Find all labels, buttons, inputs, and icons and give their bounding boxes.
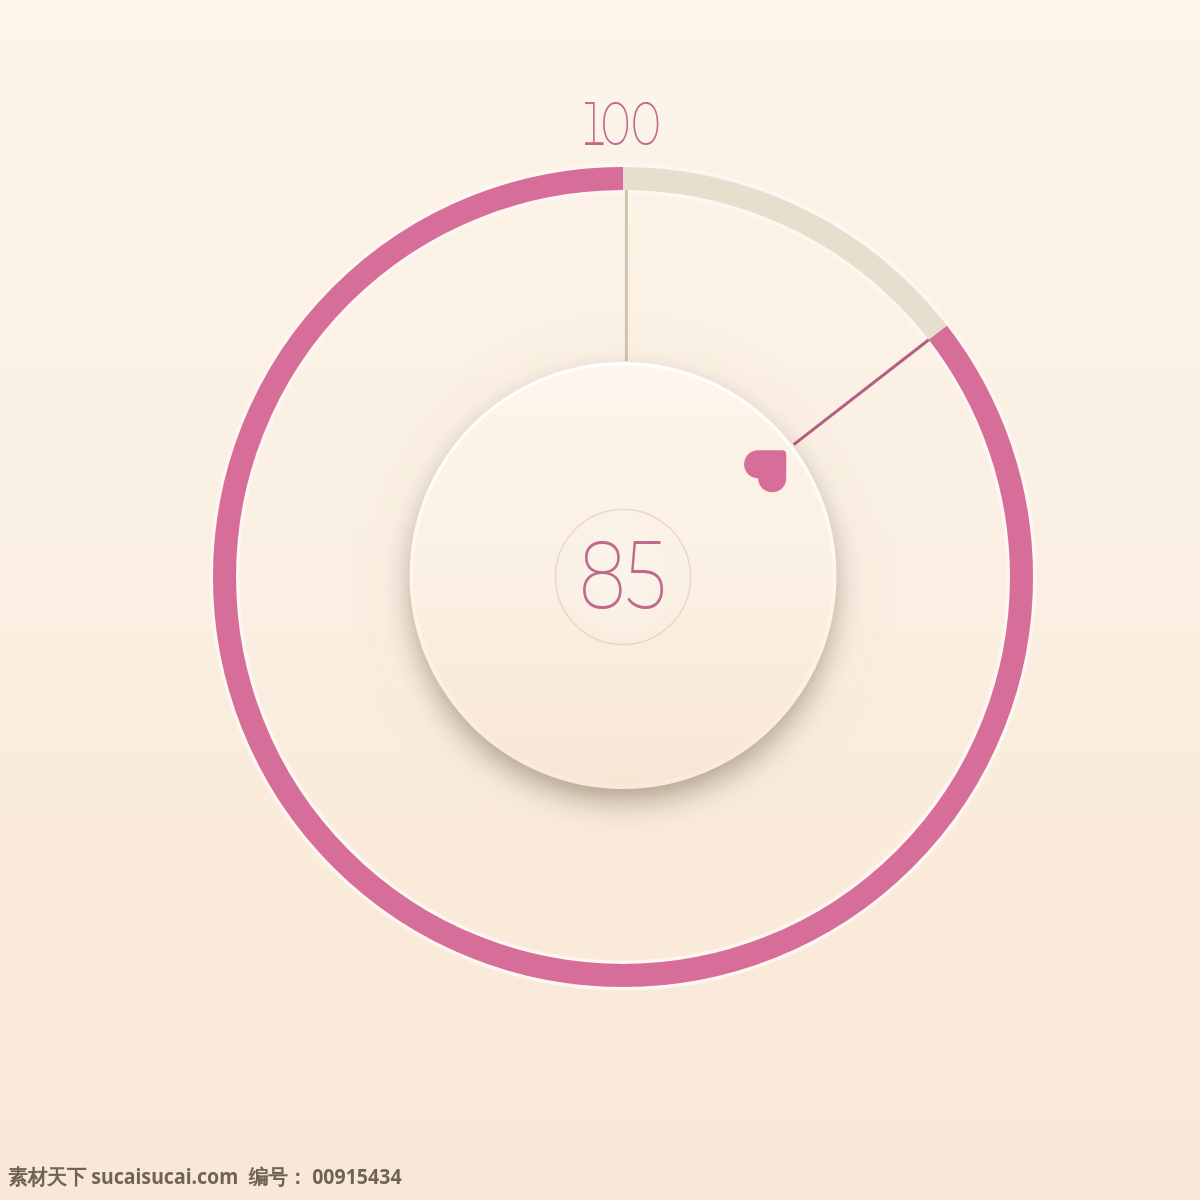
- button[interactable]: Daily goal progress ring, 85 of 100: [0, 0, 1200, 1200]
